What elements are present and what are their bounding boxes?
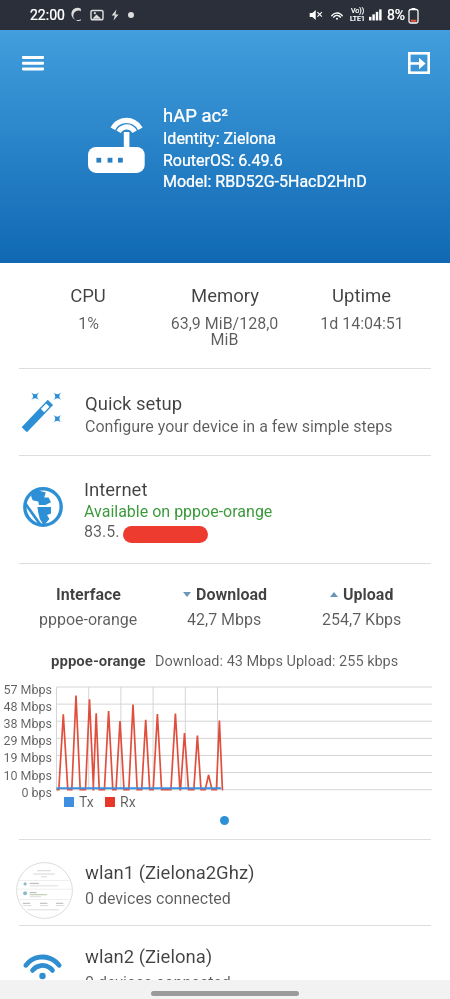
staticText: 8% bbox=[387, 7, 406, 23]
button[interactable]: wlan1 (Zielona2Ghz) bbox=[0, 840, 450, 925]
staticText: RouterOS: 6.49.6 bbox=[163, 151, 283, 170]
button[interactable]: wlan2 (Zielona) bbox=[0, 926, 450, 999]
staticText: 0 devices connected bbox=[85, 973, 231, 992]
staticText: Model: RBD52G-5HacD2HnD bbox=[163, 172, 367, 191]
staticText: Upload bbox=[343, 585, 394, 604]
staticText: hAP ac² bbox=[163, 105, 229, 127]
staticText: 254,7 Kbps bbox=[322, 610, 402, 629]
staticText: Available on pppoe-orange bbox=[84, 502, 273, 521]
button[interactable]: Quick setup bbox=[0, 369, 450, 455]
button[interactable]: Internet bbox=[0, 456, 450, 563]
staticText: wlan2 (Zielona) bbox=[85, 946, 213, 968]
staticText: Rx bbox=[120, 794, 136, 810]
staticText: 22:00 bbox=[30, 7, 65, 23]
staticText: wlan1 (Zielona2Ghz) bbox=[85, 862, 255, 884]
staticText: 0 bps bbox=[0, 785, 52, 800]
button[interactable]: Log out bbox=[397, 41, 441, 85]
staticText: Download bbox=[196, 585, 267, 604]
staticText: pppoe-orange bbox=[39, 610, 138, 629]
staticText: pppoe-orange bbox=[51, 652, 146, 670]
staticText: Uptime bbox=[332, 285, 391, 307]
staticText: Quick setup bbox=[85, 393, 183, 415]
staticText: Download: 43 Mbps Upload: 255 kbps bbox=[155, 653, 399, 670]
staticText: 38 Mbps bbox=[0, 716, 52, 731]
staticText: 19 Mbps bbox=[0, 750, 52, 765]
staticText: 1% bbox=[78, 314, 99, 333]
staticText: 42,7 Mbps bbox=[187, 610, 262, 629]
staticText: 48 Mbps bbox=[0, 699, 52, 714]
staticText: 1d 14:04:51 bbox=[320, 314, 404, 333]
staticText: Identity: Zielona bbox=[163, 129, 276, 148]
staticText: CPU bbox=[70, 285, 106, 307]
staticText: Vo)) bbox=[351, 7, 365, 15]
staticText: Tx bbox=[79, 794, 94, 810]
staticText: 0 devices connected bbox=[85, 889, 231, 908]
staticText: Interface bbox=[56, 585, 121, 604]
staticText: LTE1 bbox=[350, 15, 365, 23]
staticText: Configure your device in a few simple st… bbox=[85, 417, 393, 436]
button[interactable]: Menu bbox=[11, 41, 55, 85]
staticText: 57 Mbps bbox=[0, 682, 52, 697]
staticText: 29 Mbps bbox=[0, 733, 52, 748]
staticText: 83.5. bbox=[84, 522, 120, 541]
staticText: 63,9 MiB/128,0 MiB bbox=[156, 314, 293, 349]
staticText: Internet bbox=[84, 479, 148, 501]
staticText: 10 Mbps bbox=[0, 768, 52, 783]
staticText: Memory bbox=[191, 285, 259, 307]
